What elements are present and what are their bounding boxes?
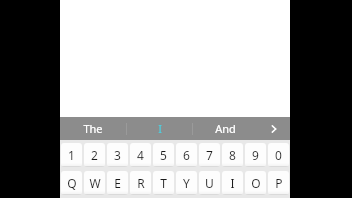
staticText: 7 (206, 147, 213, 163)
button[interactable]: 5 (153, 143, 174, 167)
button[interactable]: R (130, 171, 151, 195)
staticText: 9 (252, 147, 259, 163)
staticText: 6 (183, 147, 190, 163)
staticText: 8 (229, 147, 236, 163)
staticText: The (83, 121, 103, 136)
staticText: E (114, 175, 121, 191)
staticText: I (158, 121, 162, 136)
staticText: P (275, 175, 283, 191)
button[interactable]: E (107, 171, 128, 195)
staticText: 5 (160, 147, 167, 163)
button[interactable]: 0 (268, 143, 289, 167)
staticText: I (230, 175, 235, 191)
staticText: And (215, 121, 236, 136)
button[interactable]: 7 (199, 143, 220, 167)
button[interactable]: 4 (130, 143, 151, 167)
staticText: O (251, 175, 261, 191)
staticText: 3 (114, 147, 121, 163)
button[interactable]: Q (61, 171, 82, 195)
staticText: Q (67, 175, 77, 191)
button[interactable]: U (199, 171, 220, 195)
button[interactable]: I (127, 117, 192, 140)
button[interactable]: 2 (84, 143, 105, 167)
button[interactable]: T (153, 171, 174, 195)
button[interactable]: And (193, 117, 258, 140)
button[interactable]: 3 (107, 143, 128, 167)
staticText: T (160, 175, 167, 191)
button[interactable]: The (60, 117, 126, 140)
button[interactable]: P (268, 171, 289, 195)
button[interactable]: W (84, 171, 105, 195)
staticText: 2 (91, 147, 98, 163)
button[interactable]: I (222, 171, 243, 195)
staticText: Y (183, 175, 190, 191)
button[interactable]: 6 (176, 143, 197, 167)
staticText: 1 (68, 147, 75, 163)
button[interactable]: 1 (61, 143, 82, 167)
button[interactable]: More suggestions (258, 117, 290, 140)
button[interactable]: 9 (245, 143, 266, 167)
button[interactable]: Y (176, 171, 197, 195)
staticText: U (205, 175, 214, 191)
staticText: R (137, 175, 145, 191)
button[interactable]: O (245, 171, 266, 195)
staticText: 0 (275, 147, 282, 163)
staticText: W (89, 175, 101, 191)
staticText: 4 (137, 147, 144, 163)
button[interactable]: 8 (222, 143, 243, 167)
